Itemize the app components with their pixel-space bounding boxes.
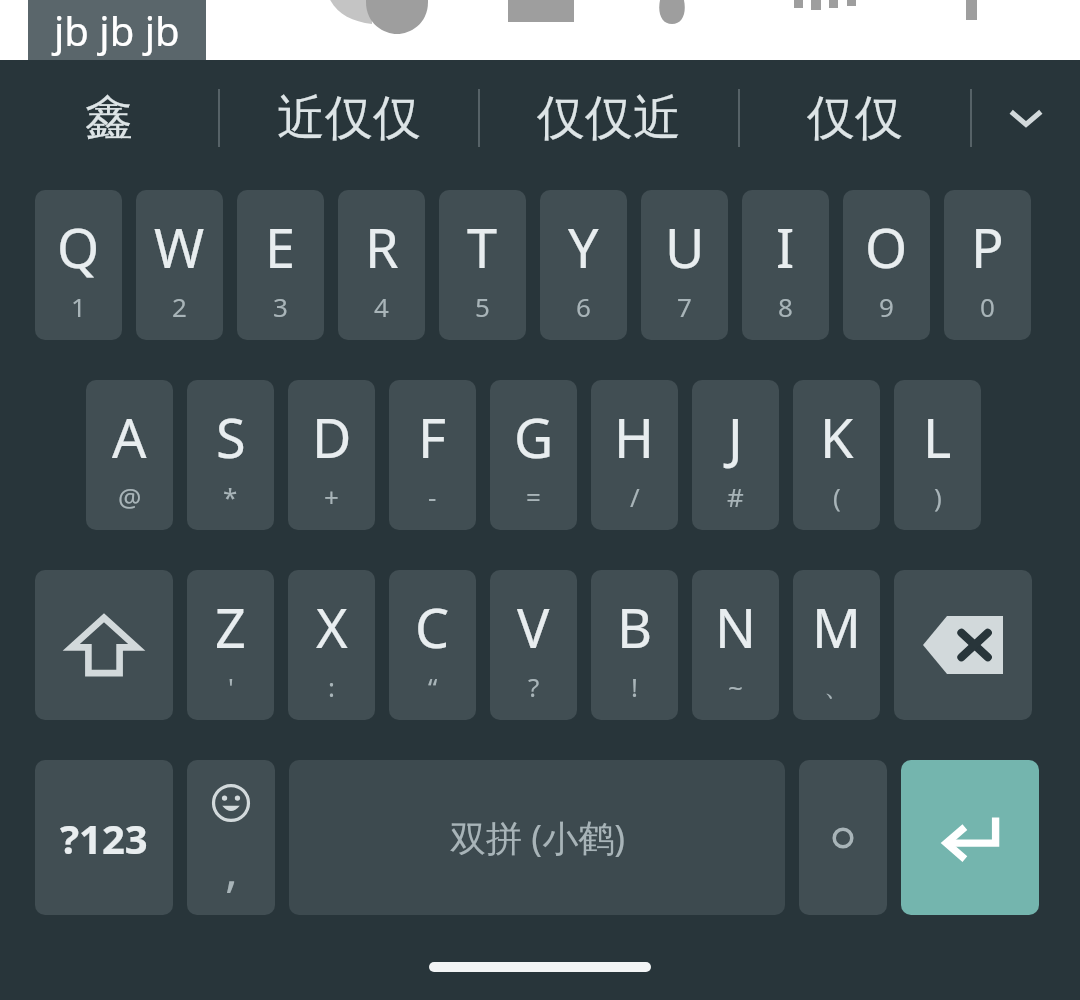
button[interactable]: H — [591, 380, 678, 530]
staticText: 0 — [980, 289, 995, 324]
staticText: “ — [428, 669, 438, 704]
button[interactable]: F — [389, 380, 476, 530]
staticText: ! — [631, 669, 638, 704]
staticText: K — [820, 400, 854, 474]
button[interactable]: Y — [540, 190, 627, 340]
staticText: 2 — [172, 289, 187, 324]
button[interactable]: Period — [799, 760, 887, 915]
button[interactable]: U — [641, 190, 728, 340]
button[interactable]: Shift — [35, 570, 173, 720]
staticText: B — [617, 590, 653, 664]
staticText: / — [630, 479, 640, 514]
button[interactable]: Emoji and comma — [187, 760, 275, 915]
staticText: ' — [228, 669, 234, 704]
staticText: X — [316, 590, 348, 664]
button[interactable]: Q — [35, 190, 122, 340]
button[interactable]: A — [86, 380, 173, 530]
staticText: Q — [57, 210, 100, 284]
button[interactable]: W — [136, 190, 223, 340]
staticText: ~ — [728, 669, 743, 704]
staticText: S — [216, 400, 246, 474]
staticText: E — [265, 210, 296, 284]
button[interactable]: L — [894, 380, 981, 530]
staticText: F — [418, 400, 447, 474]
staticText: 6 — [576, 289, 591, 324]
button[interactable]: Z — [187, 570, 274, 720]
staticText: ?123 — [60, 811, 148, 865]
button[interactable]: V — [490, 570, 577, 720]
button[interactable]: J — [692, 380, 779, 530]
button[interactable]: Enter — [901, 760, 1039, 915]
staticText: L — [923, 400, 952, 474]
staticText: 双拼 (小鹤) — [450, 813, 625, 862]
button[interactable]: 近仅仅 — [220, 60, 478, 175]
button[interactable]: 鑫 — [0, 60, 218, 175]
button[interactable]: R — [338, 190, 425, 340]
button[interactable]: C — [389, 570, 476, 720]
staticText: P — [971, 210, 1004, 284]
staticText: 3 — [273, 289, 288, 324]
button[interactable]: G — [490, 380, 577, 530]
staticText: 9 — [879, 289, 894, 324]
staticText: jb jb jb — [54, 3, 180, 57]
button[interactable]: E — [237, 190, 324, 340]
staticText: I — [776, 210, 795, 284]
staticText: Z — [215, 590, 246, 664]
staticText: , — [225, 836, 238, 901]
staticText: 5 — [475, 289, 490, 324]
staticText: @ — [118, 479, 142, 514]
staticText: R — [365, 210, 399, 284]
button[interactable]: B — [591, 570, 678, 720]
staticText: 8 — [778, 289, 793, 324]
button[interactable]: O — [843, 190, 930, 340]
button[interactable]: N — [692, 570, 779, 720]
button[interactable]: ?123 — [35, 760, 173, 915]
staticText: : — [328, 669, 335, 704]
staticText: 、 — [824, 671, 850, 704]
button[interactable]: jb jb jb — [28, 0, 206, 60]
button[interactable]: 仅仅 — [740, 60, 970, 175]
staticText: M — [812, 590, 861, 664]
staticText: Y — [568, 210, 599, 284]
staticText: # — [727, 479, 744, 514]
staticText: 4 — [374, 289, 389, 324]
button[interactable]: 双拼 (小鹤) — [289, 760, 785, 915]
button[interactable]: S — [187, 380, 274, 530]
staticText: C — [415, 590, 450, 664]
button[interactable]: X — [288, 570, 375, 720]
button[interactable]: T — [439, 190, 526, 340]
staticText: J — [728, 400, 743, 474]
button[interactable]: M — [793, 570, 880, 720]
staticText: - — [428, 479, 437, 514]
staticText: + — [324, 479, 339, 514]
button[interactable]: I — [742, 190, 829, 340]
staticText: O — [865, 210, 908, 284]
staticText: 1 — [71, 289, 86, 324]
button[interactable]: D — [288, 380, 375, 530]
button[interactable]: K — [793, 380, 880, 530]
staticText: H — [614, 400, 655, 474]
staticText: A — [112, 400, 147, 474]
staticText: 仅仅 — [807, 88, 903, 148]
staticText: 7 — [677, 289, 692, 324]
staticText: D — [312, 400, 352, 474]
staticText: ? — [528, 669, 540, 704]
staticText: ) — [934, 479, 942, 514]
button[interactable]: P — [944, 190, 1031, 340]
staticText: ( — [833, 479, 841, 514]
button[interactable]: Backspace — [894, 570, 1032, 720]
button[interactable]: Expand suggestions — [972, 60, 1080, 175]
staticText: 鑫 — [85, 88, 133, 148]
staticText: W — [154, 210, 205, 284]
staticText: = — [526, 479, 541, 514]
staticText: N — [715, 590, 757, 664]
staticText: T — [467, 210, 498, 284]
staticText: G — [514, 400, 554, 474]
staticText: 近仅仅 — [277, 88, 421, 148]
button[interactable]: 仅仅近 — [480, 60, 738, 175]
staticText: V — [517, 590, 550, 664]
staticText: * — [223, 479, 238, 514]
staticText: 仅仅近 — [537, 88, 681, 148]
staticText: U — [665, 210, 705, 284]
